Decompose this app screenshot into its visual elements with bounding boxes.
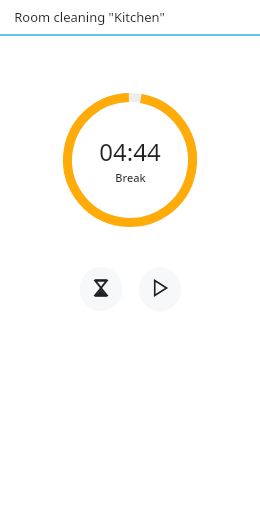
button[interactable]: Start <box>139 267 181 309</box>
staticText: Break <box>115 170 146 185</box>
staticText: 04:44 <box>99 135 161 168</box>
button[interactable]: Timer settings <box>80 267 122 309</box>
staticText: Room cleaning "Kitchen" <box>14 8 165 26</box>
